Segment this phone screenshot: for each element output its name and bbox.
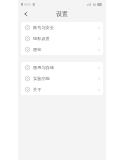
staticText: 关于 (33, 87, 98, 92)
button[interactable]: 账号与安全 (21, 22, 103, 33)
button[interactable]: 关于 (21, 84, 103, 95)
staticText: 隐私设置 (33, 36, 98, 41)
staticText: 通用与存储 (33, 65, 98, 70)
staticText: 实验功能 (33, 76, 98, 81)
staticText: 通知 (33, 47, 98, 52)
button[interactable]: 通知 (21, 44, 103, 55)
button[interactable]: 返回 (21, 9, 30, 18)
button[interactable]: 隐私设置 (21, 33, 103, 44)
button[interactable]: 通用与存储 (21, 62, 103, 73)
button[interactable]: 实验功能 (21, 73, 103, 84)
staticText: 账号与安全 (33, 25, 98, 30)
staticText: 设置 (56, 10, 68, 18)
